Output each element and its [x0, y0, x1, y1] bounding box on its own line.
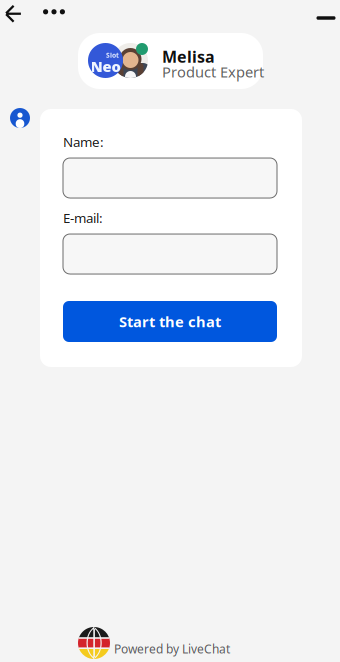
staticText: Product Expert: [162, 62, 264, 81]
staticText: Neo: [90, 57, 120, 76]
staticText: Start the chat: [119, 312, 221, 331]
staticText: Slot: [106, 51, 119, 60]
button[interactable]: Back: [0, 0, 30, 28]
staticText: E-mail:: [63, 209, 103, 227]
button[interactable]: More options: [37, 0, 71, 26]
button[interactable]: Start the chat: [63, 301, 277, 342]
staticText: Melisa: [162, 46, 215, 67]
button[interactable]: Minimize: [309, 4, 340, 32]
staticText: Name:: [63, 133, 104, 151]
staticText: Powered by LiveChat: [114, 641, 230, 657]
